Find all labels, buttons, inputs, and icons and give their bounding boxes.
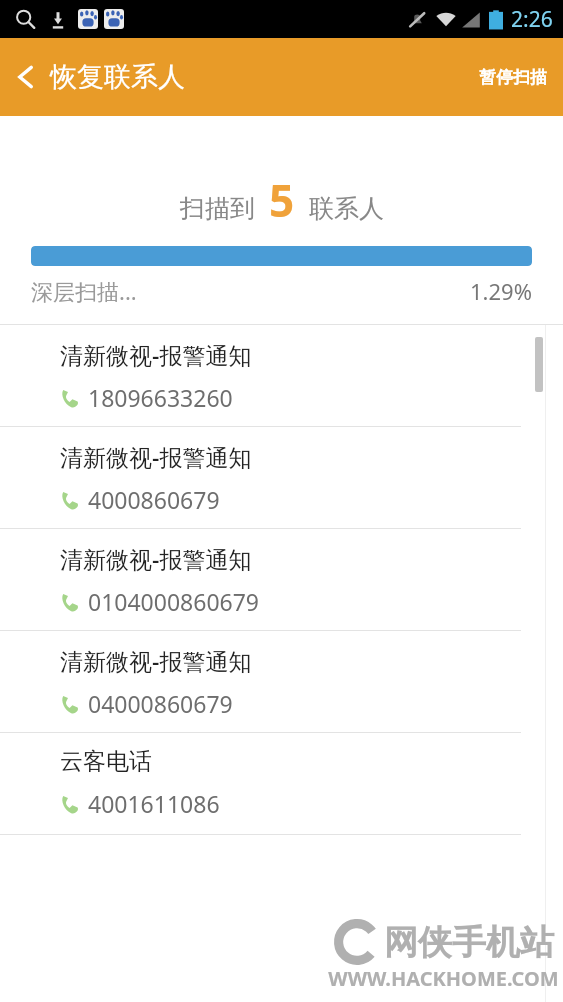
button[interactable]: 暂停扫描 (463, 53, 563, 102)
button[interactable]: 清新微视-报警通知 (0, 325, 563, 427)
staticText: 04000860679 (88, 688, 233, 719)
staticText: WWW.HACKHOME.COM (328, 965, 559, 992)
staticText: 4000860679 (88, 484, 220, 515)
staticText: 恢复联系人 (50, 60, 185, 94)
button[interactable]: 清新微视-报警通知 (0, 427, 563, 529)
button[interactable]: 清新微视-报警通知 (0, 631, 563, 733)
staticText: 清新微视-报警通知 (60, 441, 252, 472)
staticText: 扫描到 (180, 193, 255, 224)
staticText: 深层扫描... (31, 276, 137, 306)
staticText: 18096633260 (88, 382, 233, 413)
staticText: 2:26 (511, 5, 553, 34)
staticText: 网侠手机站 (384, 921, 554, 964)
other: Back (14, 65, 38, 89)
staticText: 0104000860679 (88, 586, 260, 617)
staticText: 5 (269, 170, 295, 230)
button[interactable]: 清新微视-报警通知 (0, 529, 563, 631)
staticText: 清新微视-报警通知 (60, 543, 252, 574)
button[interactable]: 云客电话 (0, 733, 563, 835)
staticText: 清新微视-报警通知 (60, 339, 252, 370)
staticText: 联系人 (309, 193, 384, 224)
staticText: 暂停扫描 (479, 67, 547, 88)
staticText: 1.29% (470, 276, 532, 306)
staticText: 云客电话 (60, 747, 152, 776)
button[interactable]: Back (0, 52, 199, 102)
staticText: 清新微视-报警通知 (60, 645, 252, 676)
staticText: 4001611086 (88, 788, 220, 819)
